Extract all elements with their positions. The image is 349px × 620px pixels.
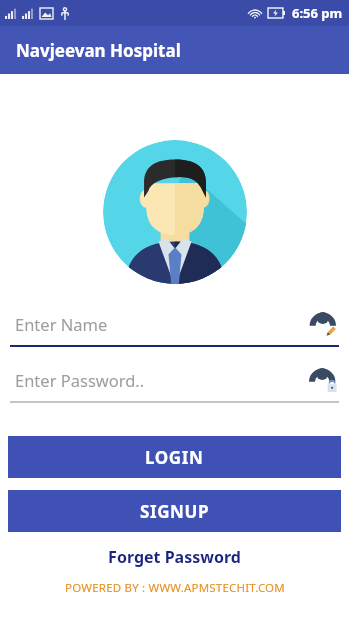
staticText: Forget Password xyxy=(108,546,241,568)
staticText: SIGNUP xyxy=(140,500,210,523)
button[interactable]: LOGIN xyxy=(8,436,341,478)
staticText: Enter Password.. xyxy=(15,369,145,391)
button[interactable]: Enter Password.. xyxy=(10,362,339,404)
button[interactable]: Enter Name xyxy=(10,306,339,348)
button[interactable]: SIGNUP xyxy=(8,490,341,532)
staticText: LOGIN xyxy=(145,446,204,469)
staticText: Enter Name xyxy=(15,313,108,335)
button[interactable]: Forget Password xyxy=(0,546,349,568)
staticText: POWERED BY : WWW.APMSTECHIT.COM xyxy=(65,580,285,596)
staticText: 6:56 pm xyxy=(292,4,343,22)
other: Edit name xyxy=(309,309,339,339)
staticText: Navjeevan Hospital xyxy=(16,39,181,62)
other: Password xyxy=(309,365,339,395)
